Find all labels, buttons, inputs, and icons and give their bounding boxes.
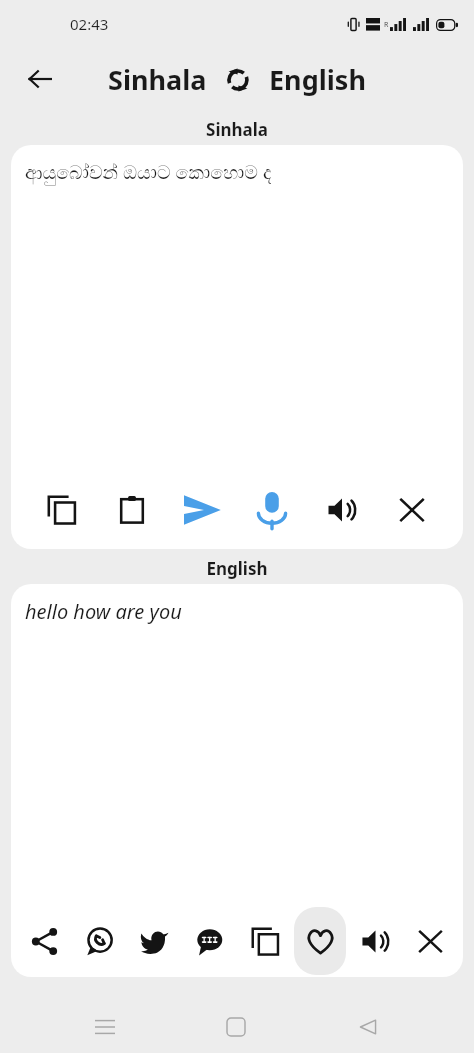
button[interactable]: Paste: [105, 483, 159, 537]
button[interactable]: English: [269, 61, 366, 98]
staticText: R: [384, 20, 389, 30]
staticText: Sinhala: [206, 118, 268, 141]
button[interactable]: Sinhala: [108, 61, 207, 98]
button[interactable]: Copy: [239, 907, 291, 975]
button[interactable]: Copy: [35, 483, 89, 537]
staticText: hello how are you: [25, 598, 182, 625]
button[interactable]: WhatsApp: [73, 907, 125, 975]
button[interactable]: Back: [18, 57, 62, 101]
button[interactable]: Home: [210, 1001, 262, 1053]
staticText: English: [269, 61, 366, 98]
button[interactable]: Voice input: [245, 483, 299, 537]
button[interactable]: Back: [342, 1001, 394, 1053]
button[interactable]: Twitter: [128, 907, 180, 975]
staticText: ආයුබෝවන් ඔයාට කොහොම ද: [25, 159, 272, 185]
button[interactable]: Favourite: [294, 907, 346, 975]
button[interactable]: SMS: [183, 907, 235, 975]
button[interactable]: Speak: [315, 483, 369, 537]
staticText: 02:43: [70, 14, 109, 34]
staticText: Sinhala: [108, 61, 207, 98]
button[interactable]: Speak: [349, 907, 401, 975]
button[interactable]: Share: [18, 907, 70, 975]
button[interactable]: Translate: [175, 483, 229, 537]
button[interactable]: Swap languages: [221, 63, 255, 97]
button[interactable]: Recent apps: [79, 1001, 131, 1053]
button[interactable]: Clear: [385, 483, 439, 537]
staticText: English: [206, 557, 268, 580]
button[interactable]: Close: [404, 907, 456, 975]
